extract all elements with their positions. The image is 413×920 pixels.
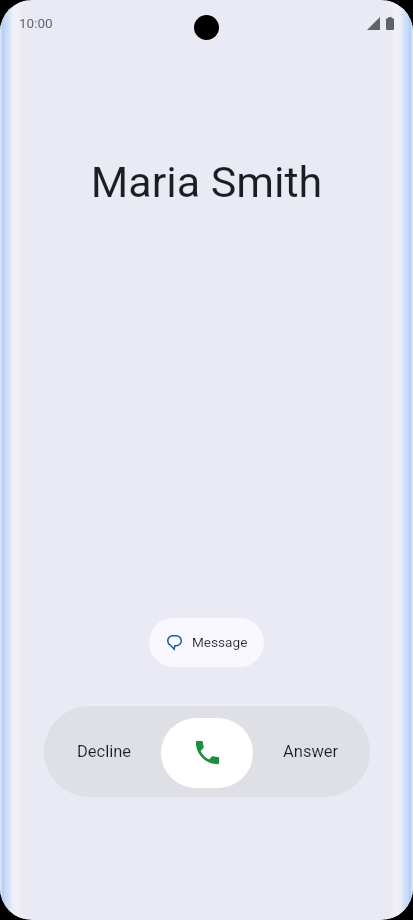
button[interactable]: Answer call <box>161 718 253 788</box>
button[interactable]: Answer <box>253 706 370 797</box>
staticText: Answer <box>283 742 339 761</box>
staticText: 10:00 <box>19 15 53 31</box>
staticText: Message <box>192 634 248 650</box>
staticText: Maria Smith <box>0 157 413 207</box>
staticText: Decline <box>77 742 132 761</box>
button[interactable]: Message <box>149 618 264 667</box>
button[interactable]: Decline <box>44 706 161 797</box>
